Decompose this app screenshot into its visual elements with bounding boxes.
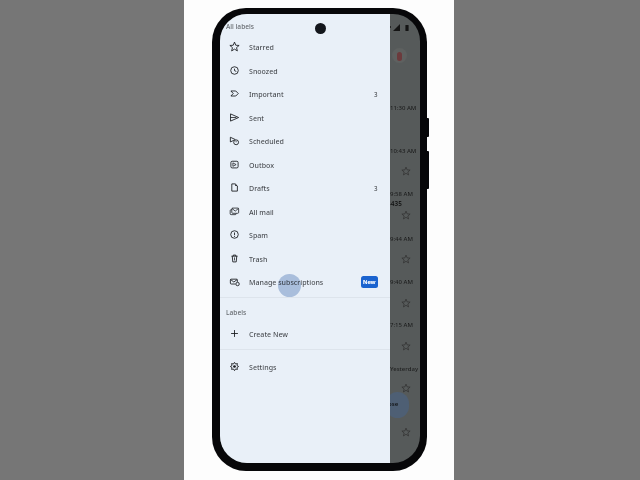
staticText: 4435 [387, 199, 402, 208]
button[interactable]: Outbox [220, 153, 390, 176]
button[interactable]: Starred [220, 35, 390, 58]
staticText: 3 [374, 90, 378, 98]
staticText: 9:58 AM [390, 190, 413, 198]
button[interactable]: Sent [220, 106, 390, 129]
staticText: Spam [249, 230, 268, 240]
staticText: Trash [249, 254, 268, 264]
button[interactable]: Drafts [220, 176, 390, 199]
staticText: Labels [226, 308, 247, 317]
staticText: Sent [249, 113, 265, 123]
staticText: Manage subscriptions [249, 277, 324, 287]
button[interactable]: All mail [220, 200, 390, 223]
staticText: Drafts [249, 183, 270, 193]
button[interactable]: Scheduled [220, 129, 390, 152]
button[interactable]: Snoozed [220, 59, 390, 82]
staticText: Outbox [249, 160, 275, 170]
staticText: Snoozed [249, 66, 278, 76]
staticText: 11:30 AM [390, 104, 417, 112]
staticText: Settings [249, 362, 277, 372]
button[interactable]: Manage subscriptions [220, 270, 390, 293]
staticText: Important [249, 89, 284, 99]
staticText: 9:44 AM [390, 235, 413, 243]
staticText: All labels [226, 22, 255, 31]
staticText: 9:40 AM [390, 278, 413, 286]
staticText: Starred [249, 42, 274, 52]
button[interactable]: Important [220, 82, 390, 105]
staticText: Yesterday [390, 365, 419, 373]
button[interactable]: Spam [220, 223, 390, 246]
button[interactable]: Settings [220, 355, 390, 378]
staticText: All mail [249, 207, 274, 217]
button[interactable]: Trash [220, 247, 390, 270]
staticText: Create New [249, 329, 289, 339]
staticText: 10:43 AM [390, 147, 417, 155]
staticText: 3 [374, 184, 378, 192]
staticText: Scheduled [249, 136, 284, 146]
staticText: 7:15 AM [390, 321, 413, 329]
staticText: New [363, 278, 376, 286]
staticText: ose [388, 400, 399, 408]
button[interactable]: Create New [220, 322, 390, 345]
